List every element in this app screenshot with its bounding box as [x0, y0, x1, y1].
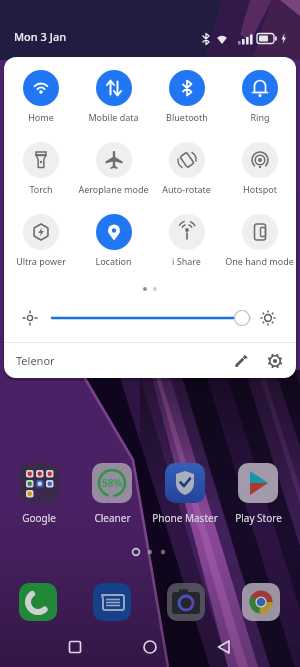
staticText: Cleaner: [94, 511, 131, 525]
button[interactable]: Ultra power: [4, 214, 77, 286]
button[interactable]: i Share: [150, 214, 223, 286]
button[interactable]: [238, 463, 278, 503]
staticText: Mobile data: [88, 111, 139, 123]
button[interactable]: Mobile data: [77, 70, 150, 142]
button[interactable]: [55, 633, 95, 663]
button[interactable]: Torch: [4, 142, 77, 214]
staticText: Bluetooth: [166, 111, 208, 123]
button[interactable]: [232, 352, 250, 370]
button[interactable]: [93, 583, 131, 621]
button[interactable]: [92, 463, 132, 503]
staticText: Mon 3 Jan: [14, 29, 67, 44]
button[interactable]: [167, 583, 205, 621]
button[interactable]: Play Store: [218, 511, 298, 525]
button[interactable]: Phone Master: [145, 511, 225, 525]
staticText: Torch: [29, 183, 53, 195]
button[interactable]: Auto-rotate: [150, 142, 223, 214]
staticText: Play Store: [235, 511, 282, 525]
staticText: Location: [95, 255, 132, 267]
button[interactable]: Cleaner: [72, 511, 152, 525]
button[interactable]: Location: [77, 214, 150, 286]
staticText: 58%: [102, 476, 123, 490]
staticText: Home: [28, 111, 54, 123]
button[interactable]: [19, 583, 57, 621]
button[interactable]: One hand mode: [223, 214, 296, 286]
button[interactable]: Ring: [223, 70, 296, 142]
button[interactable]: Home: [4, 70, 77, 142]
staticText: One hand mode: [225, 255, 294, 267]
staticText: Google: [22, 511, 56, 525]
staticText: Telenor: [16, 353, 55, 368]
staticText: Auto-rotate: [162, 183, 211, 195]
staticText: i Share: [172, 255, 201, 267]
staticText: Phone Master: [152, 511, 218, 525]
button[interactable]: [242, 583, 280, 621]
button[interactable]: Bluetooth: [150, 70, 223, 142]
staticText: Hotspot: [243, 183, 277, 195]
button[interactable]: Aeroplane mode: [77, 142, 150, 214]
button[interactable]: [4, 308, 296, 328]
staticText: Ultra power: [16, 255, 66, 267]
button[interactable]: [19, 463, 59, 503]
button[interactable]: [204, 633, 244, 663]
button[interactable]: [266, 352, 284, 370]
staticText: Ring: [250, 111, 270, 123]
button[interactable]: [130, 633, 170, 663]
button[interactable]: Hotspot: [223, 142, 296, 214]
button[interactable]: Google: [0, 511, 79, 525]
staticText: Aeroplane mode: [78, 183, 149, 195]
button[interactable]: [165, 463, 205, 503]
